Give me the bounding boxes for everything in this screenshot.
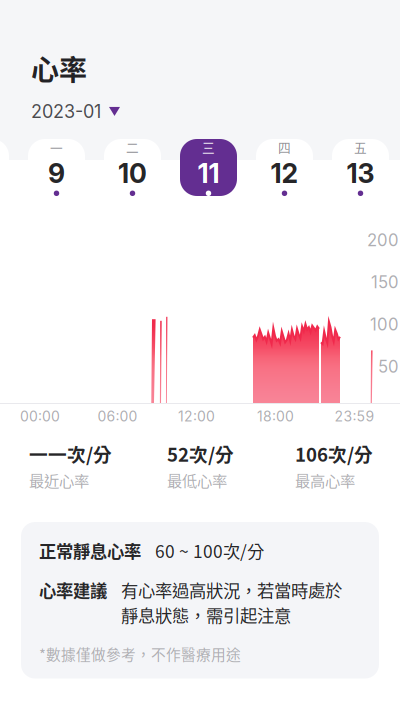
staticText: 200 [367,230,399,250]
staticText: 12 [270,157,298,190]
staticText: 一 [50,138,63,156]
staticText: 18:00 [257,408,294,425]
staticText: 最近心率 [29,469,89,491]
staticText: 12:00 [178,408,215,425]
staticText: 心率建議 [39,577,107,602]
staticText: 2023-01 [31,100,101,122]
staticText: 最高心率 [295,469,355,491]
staticText: *數據僅做參考，不作醫療用途 [39,643,241,664]
staticText: 正常靜息心率 [39,538,141,563]
staticText: 11 [197,157,219,190]
staticText: 52次/分 [167,440,234,467]
staticText: 四 [278,138,291,156]
staticText: 150 [371,272,399,292]
staticText: 最低心率 [167,469,227,491]
staticText: 二 [126,138,139,156]
staticText: 13 [346,157,374,190]
staticText: 10 [118,157,147,190]
button[interactable]: 四 [256,139,313,196]
staticText: 60 ~ 100次/分 [155,538,264,563]
staticText: 23:59 [334,408,374,425]
staticText: 100 [370,314,399,334]
staticText: 06:00 [97,408,137,425]
button[interactable]: 五 [332,139,389,196]
button[interactable]: 一 [28,139,85,196]
staticText: 50 [378,356,399,377]
staticText: 有心率過高狀況，若當時處於靜息狀態，需引起注意 [121,577,342,627]
button[interactable]: 二 [104,139,161,196]
staticText: 106次/分 [295,440,373,467]
staticText: 三 [202,138,215,156]
staticText: 五 [354,138,367,156]
button[interactable]: 日 [0,139,9,196]
staticText: 9 [48,157,65,190]
staticText: 心率 [31,48,87,88]
staticText: 一一次/分 [29,440,112,467]
button[interactable]: 三 [180,139,237,196]
staticText: 00:00 [20,408,60,425]
button[interactable]: 2023-01 [31,100,120,122]
